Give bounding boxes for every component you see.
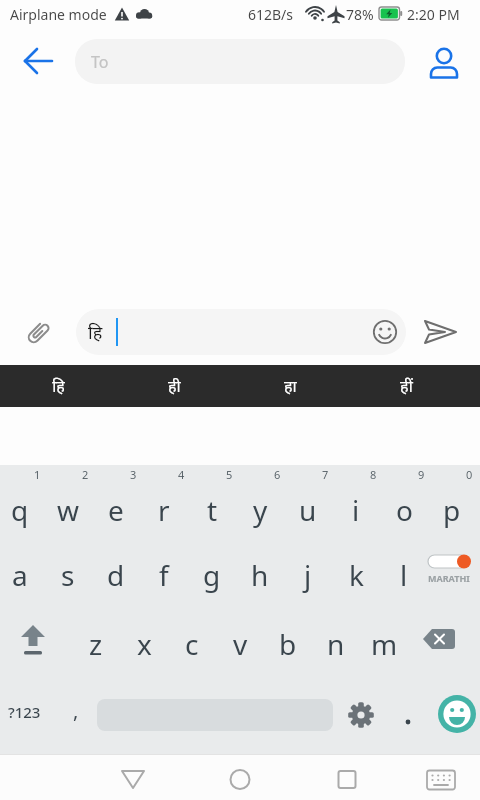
button[interactable] — [418, 312, 462, 352]
button[interactable]: d — [92, 542, 140, 608]
staticText: q — [11, 491, 29, 529]
button[interactable]: c — [168, 611, 216, 677]
staticText: f — [159, 556, 169, 594]
staticText: हि — [88, 320, 103, 345]
staticText: 1 — [34, 467, 41, 482]
button[interactable] — [325, 764, 369, 794]
staticText: i — [352, 491, 360, 529]
button[interactable]: r — [140, 477, 188, 543]
staticText: 4 — [178, 467, 185, 482]
button[interactable]: u — [284, 477, 332, 543]
staticText: e — [108, 491, 124, 529]
button[interactable] — [20, 315, 56, 351]
staticText: z — [89, 625, 103, 663]
staticText: x — [137, 625, 152, 663]
staticText: y — [253, 491, 268, 529]
staticText: 8 — [370, 467, 377, 482]
button[interactable]: f — [140, 542, 188, 608]
button[interactable]: ?123 — [0, 679, 48, 745]
staticText: 3 — [130, 467, 137, 482]
staticText: p — [443, 491, 461, 529]
staticText: , — [73, 697, 79, 724]
staticText: हि — [52, 375, 65, 397]
button[interactable]: e — [92, 477, 140, 543]
button[interactable]: n — [312, 611, 360, 677]
button[interactable]: t — [188, 477, 236, 543]
staticText: k — [349, 556, 364, 594]
button[interactable] — [418, 764, 468, 794]
staticText: 0 — [466, 467, 473, 482]
button[interactable]: v — [216, 611, 264, 677]
button[interactable]: g — [188, 542, 236, 608]
staticText: g — [203, 556, 221, 594]
staticText: Airplane mode — [10, 5, 107, 24]
button[interactable]: o — [380, 477, 428, 543]
staticText: MARATHI — [428, 572, 470, 584]
button[interactable]: x — [120, 611, 168, 677]
button[interactable] — [218, 764, 262, 794]
staticText: d — [107, 556, 125, 594]
staticText: 6 — [274, 467, 281, 482]
button[interactable]: a — [0, 542, 44, 608]
button[interactable]: हा — [232, 365, 348, 407]
button[interactable]: To — [75, 39, 405, 84]
button[interactable] — [438, 695, 476, 733]
staticText: To — [91, 51, 109, 73]
button[interactable] — [111, 764, 155, 794]
staticText: u — [299, 491, 317, 529]
staticText: 7 — [322, 467, 329, 482]
button[interactable] — [12, 36, 64, 86]
button[interactable]: j — [284, 542, 332, 608]
staticText: 612B/s — [248, 5, 294, 24]
button[interactable] — [420, 36, 468, 86]
button[interactable]: s — [44, 542, 92, 608]
button[interactable] — [416, 605, 472, 671]
staticText: l — [400, 556, 408, 594]
button[interactable]: q — [0, 477, 44, 543]
staticText: 5 — [226, 467, 233, 482]
button[interactable]: b — [264, 611, 312, 677]
button[interactable]: हि — [0, 365, 116, 407]
staticText: 78% — [346, 5, 374, 24]
button[interactable]: z — [72, 611, 120, 677]
staticText: v — [233, 625, 248, 663]
button[interactable]: l — [380, 542, 428, 608]
button[interactable] — [400, 705, 416, 725]
button[interactable]: हि — [76, 309, 406, 355]
staticText: 2 — [82, 467, 89, 482]
button[interactable]: , — [56, 677, 96, 743]
staticText: ही — [168, 375, 181, 397]
staticText: j — [304, 556, 312, 594]
staticText: s — [61, 556, 75, 594]
button[interactable] — [8, 605, 60, 671]
button[interactable]: p — [428, 477, 476, 543]
staticText: ?123 — [8, 702, 41, 722]
staticText: t — [207, 491, 218, 529]
button[interactable]: y — [236, 477, 284, 543]
staticText: हा — [284, 375, 297, 397]
button[interactable]: w — [44, 477, 92, 543]
staticText: 9 — [418, 467, 425, 482]
staticText: b — [279, 625, 297, 663]
staticText: हीं — [400, 375, 413, 397]
button[interactable]: h — [236, 542, 284, 608]
button[interactable] — [343, 697, 379, 733]
staticText: m — [371, 625, 398, 663]
staticText: n — [327, 625, 345, 663]
button[interactable]: k — [332, 542, 380, 608]
staticText: c — [185, 625, 199, 663]
button[interactable]: i — [332, 477, 380, 543]
staticText: r — [158, 491, 170, 529]
staticText: o — [396, 491, 413, 529]
button[interactable]: m — [360, 611, 408, 677]
staticText: a — [12, 556, 28, 594]
button[interactable]: हीं — [348, 365, 464, 407]
staticText: 2:20 PM — [407, 5, 460, 24]
button[interactable]: ही — [116, 365, 232, 407]
staticText: w — [57, 491, 80, 529]
staticText: h — [251, 556, 269, 594]
